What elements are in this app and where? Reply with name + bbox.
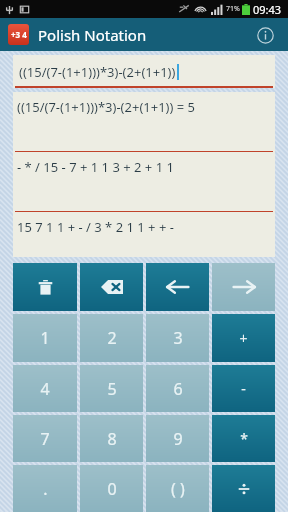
button[interactable]: . [13,465,77,512]
button[interactable]: 1 [13,314,77,362]
staticText: 7 [40,428,50,450]
button[interactable]: 5 [80,365,143,412]
staticText: ( ) [171,478,185,500]
staticText: * [240,429,248,448]
staticText: +3 4 [11,29,27,40]
button[interactable]: 4 [13,365,77,412]
staticText: 15 7 1 1 + - / 3 * 2 1 1 + + - [17,218,174,236]
button[interactable] [212,465,275,512]
button[interactable]: Clear [13,263,77,311]
button[interactable]: Move right [212,263,275,311]
staticText: - [241,379,246,398]
button[interactable]: ((15/(7-(1+1)))*3)-(2+(1+1)) [13,55,275,88]
button[interactable]: - [212,365,275,412]
staticText: 1 [40,327,50,349]
button[interactable]: Move left [146,263,209,311]
button[interactable]: 3 [146,314,209,362]
staticText: 5 [107,378,117,400]
staticText: 6 [173,378,183,400]
staticText: + [239,329,248,348]
staticText: . [43,478,48,500]
button[interactable]: Info [250,20,280,50]
button[interactable]: 2 [80,314,143,362]
button[interactable]: 6 [146,365,209,412]
staticText: 0 [107,478,117,500]
staticText: ((15/(7-(1+1)))*3)-(2+(1+1)) = 5 [17,98,196,116]
button[interactable]: + [212,314,275,362]
staticText: 2 [107,327,117,349]
staticText: 4 [40,378,50,400]
staticText: 9 [173,428,183,450]
staticText: - * / 15 - 7 + 1 1 3 + 2 + 1 1 [17,158,174,176]
button[interactable]: Backspace [80,263,143,311]
staticText: Polish Notation [38,25,147,45]
staticText: 8 [107,428,117,450]
staticText: 3 [173,327,183,349]
button[interactable]: ( ) [146,465,209,512]
button[interactable]: 0 [80,465,143,512]
staticText: 09:43 [253,2,282,17]
staticText: 71% [226,4,240,14]
button[interactable]: 7 [13,415,77,462]
button[interactable]: 8 [80,415,143,462]
staticText: ((15/(7-(1+1)))*3)-(2+(1+1)) [19,63,176,81]
button[interactable]: 9 [146,415,209,462]
button[interactable]: * [212,415,275,462]
